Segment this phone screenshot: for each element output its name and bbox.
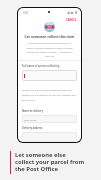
staticText: Let someone collect this item <box>22 34 77 39</box>
staticText: To give someone collection authority, en… <box>26 41 73 57</box>
staticText: Let someone else collect your parcel fro… <box>15 151 85 173</box>
staticText: CANCEL <box>66 18 77 22</box>
button[interactable]: CANCEL <box>66 18 77 22</box>
staticText: Make sure the name and address matches e… <box>22 88 77 101</box>
staticText: Full name of person collecting <box>22 64 60 68</box>
staticText: John Smith <box>24 118 37 121</box>
staticText: Name at delivery <box>22 109 44 113</box>
staticText: Delivery address <box>22 126 43 130</box>
staticText: 9:41 <box>23 11 29 15</box>
button[interactable] <box>22 70 77 81</box>
